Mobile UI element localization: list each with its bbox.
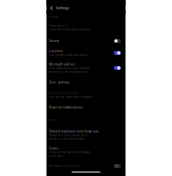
staticText: Appearance xyxy=(49,24,68,27)
staticText: Sync settings xyxy=(49,81,69,84)
staticText: Lorem ipsum dolor sit amet consectetur xyxy=(49,67,90,70)
staticText: GENERAL xyxy=(49,16,58,18)
staticText: Choose the codec used for video playback xyxy=(49,151,90,154)
button[interactable]: Microsoft ad/Tex xyxy=(46,59,125,76)
staticText: Allow the app to access your location xyxy=(49,54,87,56)
button[interactable]: Sound xyxy=(46,35,125,46)
button[interactable]: Sync over cellular xyxy=(46,88,125,101)
button[interactable]: Location xyxy=(46,46,125,59)
staticText: adipiscing elit sed do eiusmod tempor xyxy=(49,71,88,73)
staticText: Only sync your library on Wi-Fi networks xyxy=(49,96,92,98)
button[interactable]: Reset recommendation xyxy=(46,101,125,113)
staticText: on this device xyxy=(49,155,63,157)
staticText: Default resolution and frame rate xyxy=(49,130,99,133)
staticText: Choose how the app looks on this device xyxy=(49,28,90,31)
button[interactable]: Codec xyxy=(46,143,125,160)
button[interactable]: Appearance xyxy=(46,19,125,35)
button[interactable]: Default resolution and frame rate xyxy=(46,126,125,143)
staticText: Reset recommendation xyxy=(49,106,83,109)
staticText: Sync over cellular xyxy=(49,91,78,95)
staticText: Location xyxy=(49,49,63,53)
staticText: Automatically selects the best quality xyxy=(49,134,88,137)
button[interactable]: Sync settings xyxy=(46,76,125,88)
staticText: Settings xyxy=(56,6,69,10)
button[interactable]: Hardware decoding xyxy=(46,160,125,171)
staticText: Codec xyxy=(49,147,59,150)
staticText: Hardware decoding xyxy=(49,164,79,168)
staticText: Microsoft ad/Tex xyxy=(49,63,75,66)
staticText: Sound xyxy=(49,39,59,43)
button[interactable]: Settings xyxy=(46,6,69,10)
staticText: available for your connection speed xyxy=(49,138,84,140)
staticText: CACHE xyxy=(49,119,57,121)
